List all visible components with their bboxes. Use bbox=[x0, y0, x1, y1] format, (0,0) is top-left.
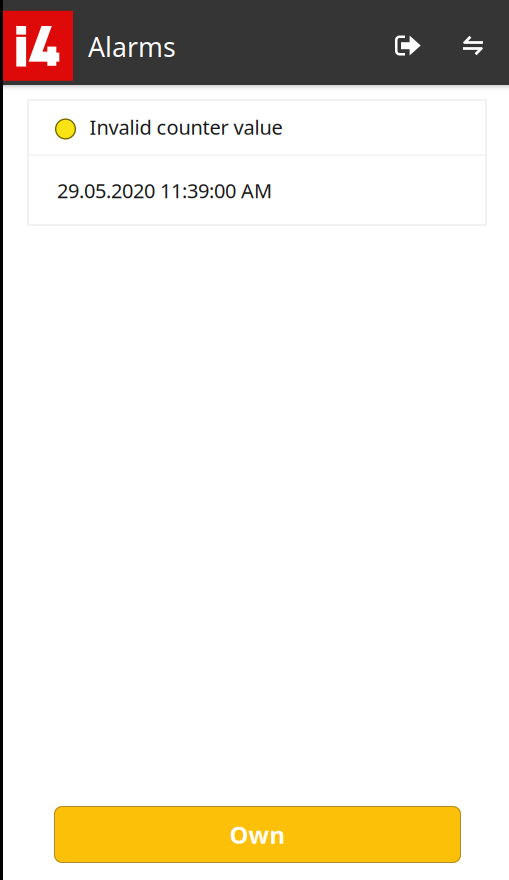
staticText: Own bbox=[229, 819, 285, 850]
button[interactable]: Log out bbox=[382, 0, 434, 85]
staticText: Alarms bbox=[88, 29, 176, 64]
staticText: Invalid counter value bbox=[89, 114, 282, 140]
staticText: 29.05.2020 11:39:00 AM bbox=[57, 177, 272, 204]
button[interactable]: Switch user bbox=[449, 0, 497, 85]
button[interactable]: Own bbox=[54, 806, 461, 863]
